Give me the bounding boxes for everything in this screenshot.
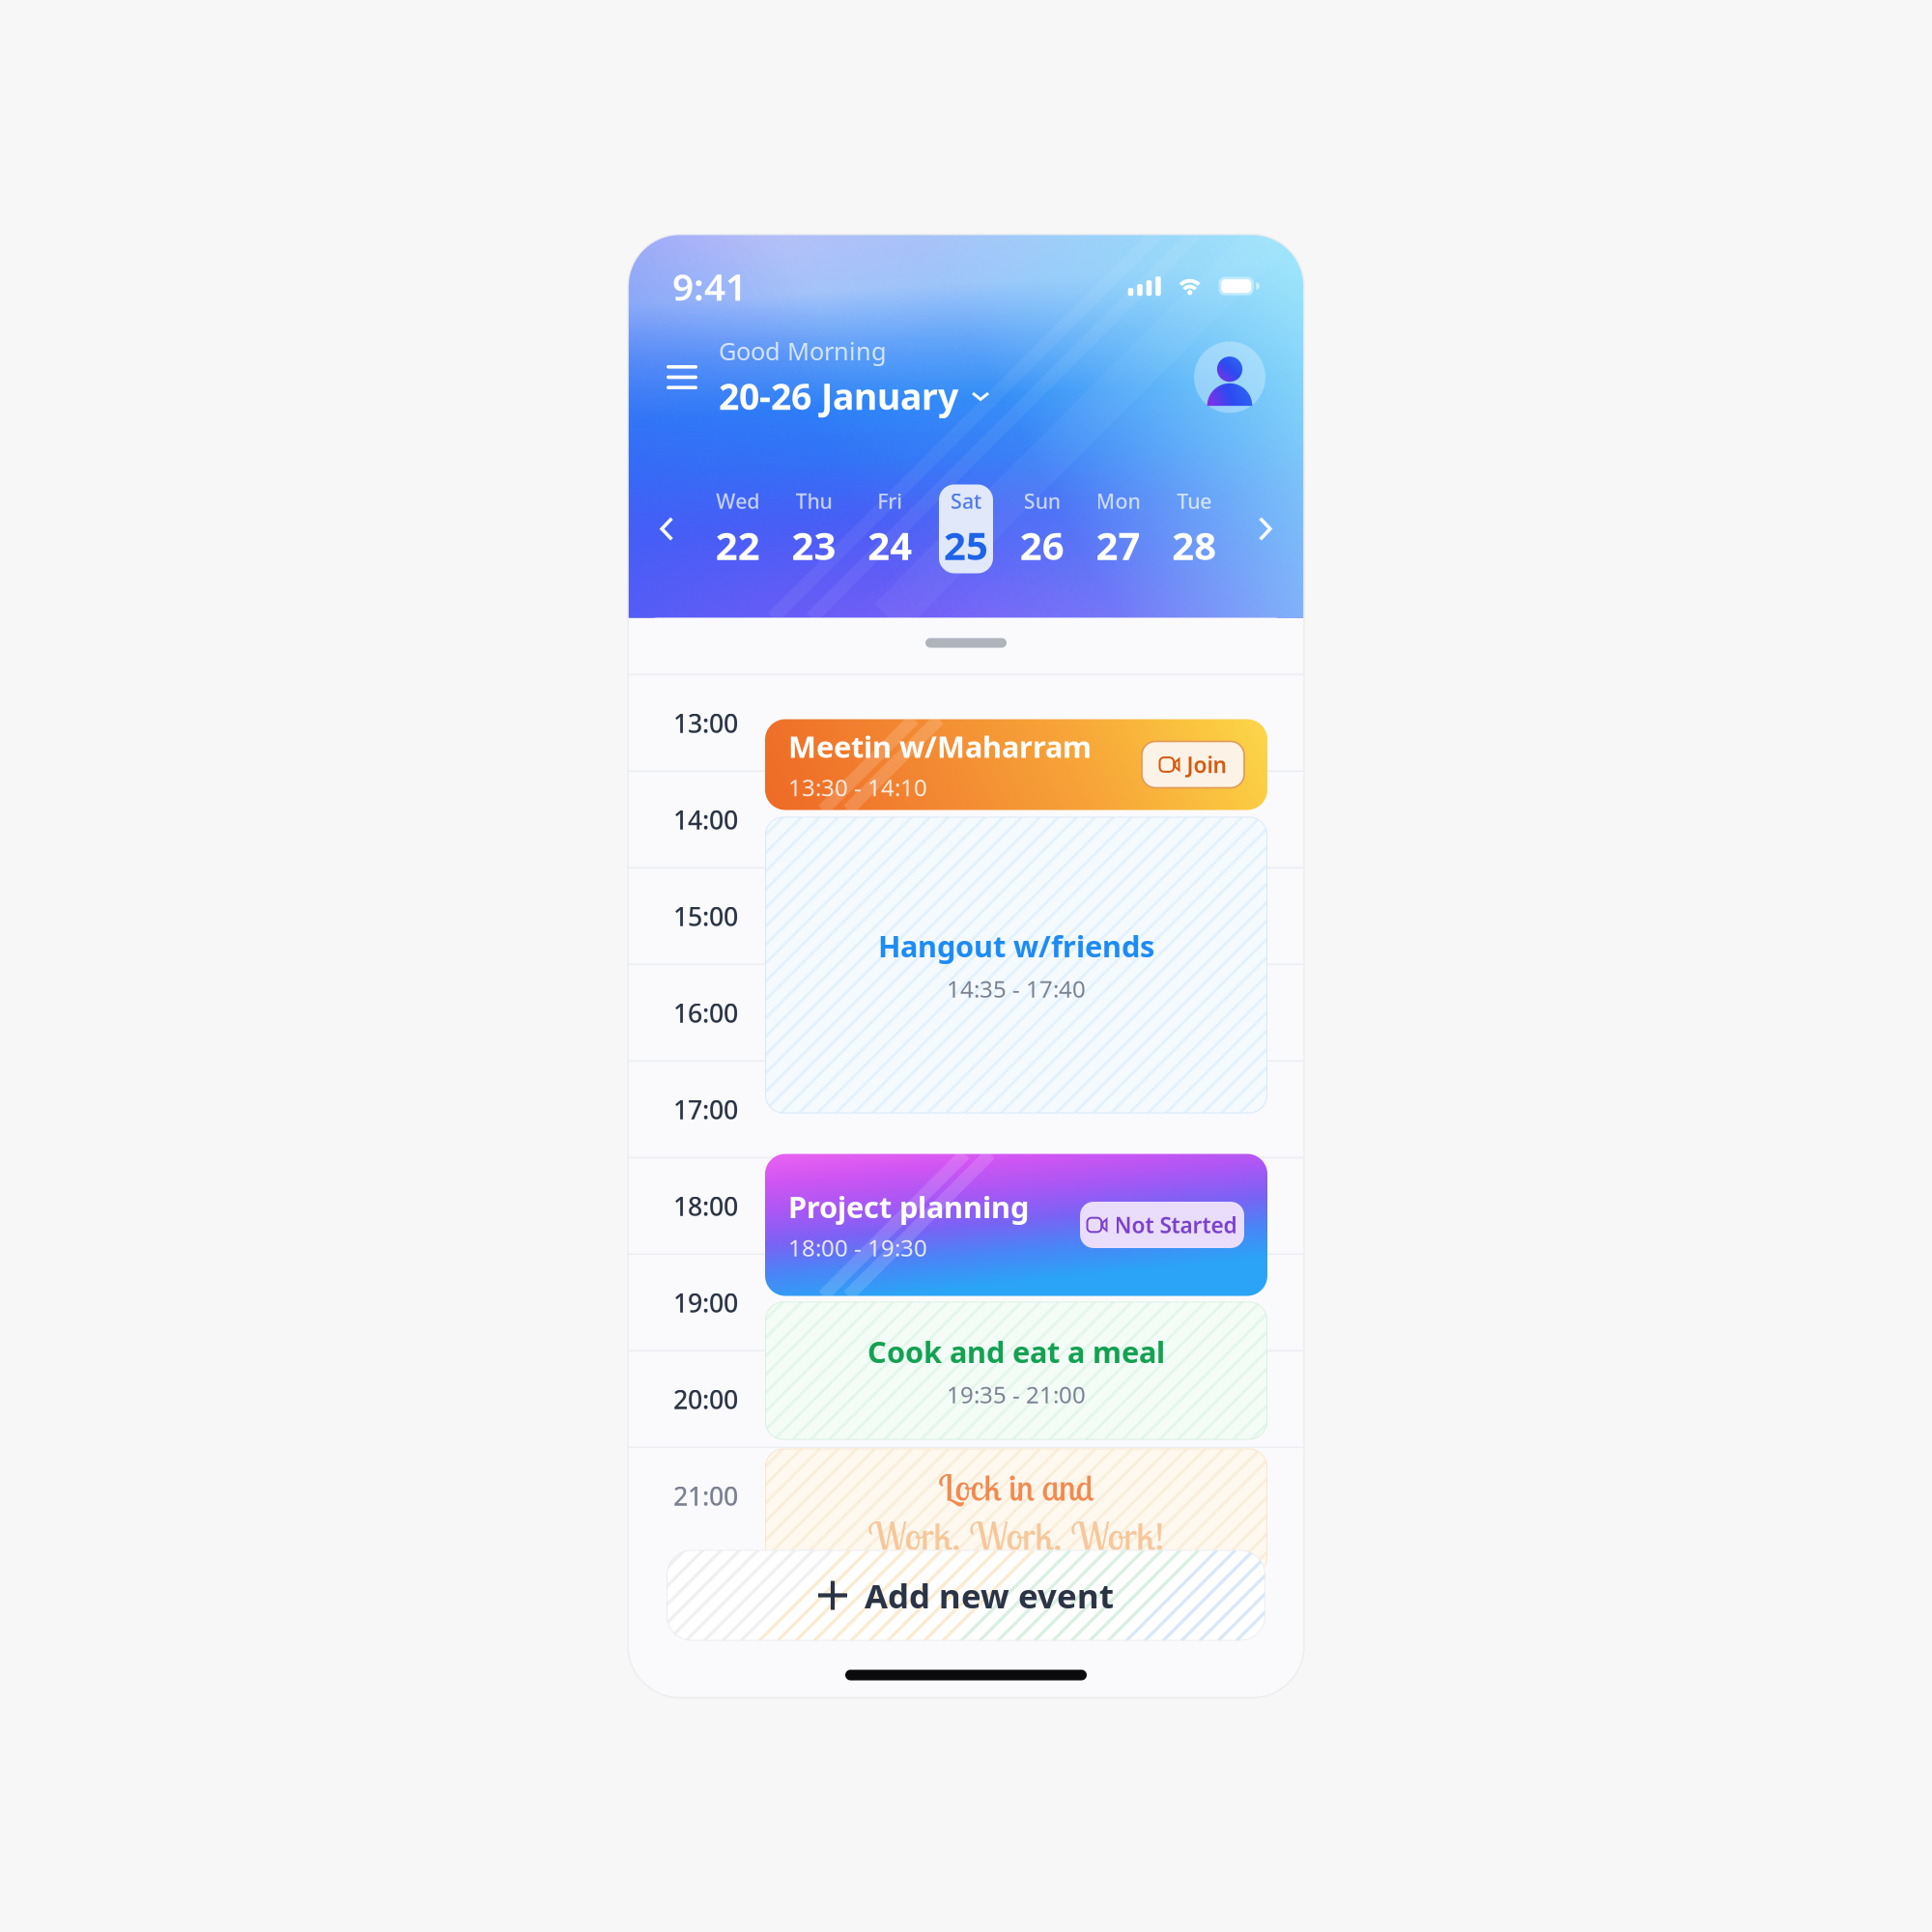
button[interactable]: Tue — [1167, 484, 1221, 573]
staticText: 13:30 - 14:10 — [788, 772, 927, 803]
staticText: 17:00 — [673, 1092, 738, 1126]
button[interactable]: Fri — [863, 484, 917, 573]
staticText: Sat — [951, 487, 981, 514]
staticText: Cook and eat a meal — [867, 1332, 1165, 1371]
staticText: 18:00 — [673, 1189, 738, 1223]
staticText: Add new event — [865, 1573, 1114, 1618]
button[interactable]: Sat — [939, 484, 993, 573]
staticText: Thu — [796, 487, 832, 514]
staticText: 22 — [716, 519, 760, 571]
staticText: Fri — [877, 487, 902, 514]
staticText: 25 — [944, 519, 988, 571]
staticText: 14:00 — [673, 802, 738, 837]
staticText: 19:00 — [673, 1285, 738, 1320]
staticText: Meetin w/Maharram — [788, 727, 1092, 766]
staticText: 13:00 — [673, 706, 738, 740]
staticText: Wed — [716, 487, 759, 514]
staticText: 15:00 — [673, 899, 738, 933]
staticText: 16:00 — [673, 996, 738, 1030]
staticText: 20-26 January — [719, 372, 958, 420]
staticText: Work, Work, Work! — [868, 1512, 1165, 1560]
button[interactable]: Profile — [1194, 341, 1265, 413]
staticText: 21:00 — [673, 1479, 738, 1513]
staticText: 27 — [1096, 519, 1140, 571]
staticText: Join — [1187, 750, 1226, 779]
staticText: Hangout w/friends — [878, 926, 1154, 965]
staticText: 20:00 — [673, 1382, 738, 1416]
button[interactable]: Menu — [667, 346, 719, 409]
button[interactable]: Not Started — [1080, 1202, 1244, 1248]
staticText: 28 — [1172, 519, 1216, 571]
staticText: 9:41 — [672, 261, 747, 311]
button[interactable]: Mon — [1091, 484, 1145, 573]
button[interactable]: Wed — [711, 484, 765, 573]
button[interactable]: 20-26 January — [719, 372, 990, 420]
staticText: 24 — [868, 519, 912, 571]
button[interactable]: Sun — [1015, 484, 1069, 573]
button[interactable]: Previous week — [645, 500, 689, 557]
staticText: 18:00 - 19:30 — [788, 1232, 927, 1263]
staticText: 19:35 - 21:00 — [947, 1379, 1086, 1410]
staticText: Project planning — [788, 1187, 1029, 1226]
button[interactable]: Next week — [1243, 500, 1287, 557]
staticText: 14:35 - 17:40 — [947, 973, 1086, 1004]
staticText: Mon — [1096, 487, 1140, 514]
button[interactable]: Add new event — [667, 1550, 1265, 1641]
staticText: Not Started — [1114, 1210, 1237, 1239]
button[interactable]: Join — [1142, 741, 1244, 788]
staticText: 23 — [792, 519, 836, 571]
button[interactable]: Thu — [787, 484, 841, 573]
staticText: Lock in and — [938, 1465, 1094, 1510]
staticText: Tue — [1177, 487, 1212, 514]
staticText: 26 — [1020, 519, 1064, 571]
staticText: Sun — [1024, 487, 1060, 514]
staticText: Good Morning — [719, 335, 887, 367]
